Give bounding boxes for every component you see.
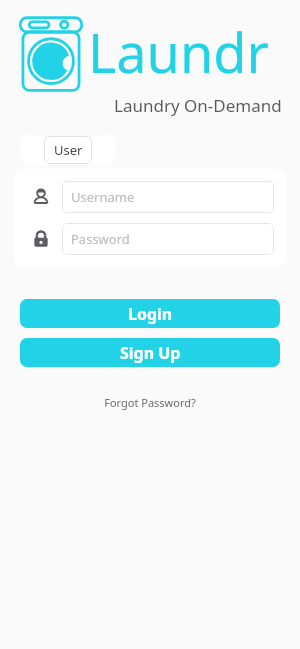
- staticText: Sign Up: [120, 342, 181, 364]
- staticText: Username: [71, 188, 135, 206]
- staticText: User: [54, 141, 83, 159]
- button[interactable]: Forgot Password?: [96, 392, 204, 413]
- staticText: Laundr: [88, 15, 269, 89]
- button[interactable]: Login: [20, 299, 280, 328]
- other: Username: [26, 182, 56, 212]
- button[interactable]: User: [44, 136, 92, 164]
- staticText: Laundry On-Demand: [114, 94, 282, 117]
- button[interactable]: Password: [62, 223, 274, 255]
- other: Password: [26, 224, 56, 254]
- staticText: Login: [128, 303, 173, 325]
- button[interactable]: Username: [62, 181, 274, 213]
- staticText: Password: [71, 230, 130, 248]
- button[interactable]: Sign Up: [20, 338, 280, 367]
- staticText: Forgot Password?: [104, 395, 196, 410]
